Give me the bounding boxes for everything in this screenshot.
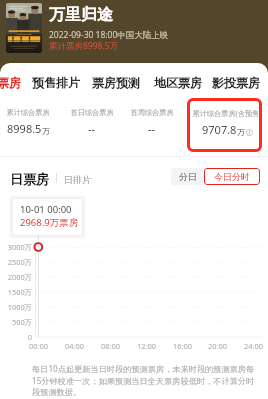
staticText: 1500万 — [7, 287, 32, 297]
button[interactable]: 票房 — [0, 75, 21, 90]
staticText: 预售排片 — [32, 75, 80, 90]
staticText: 3000万 — [7, 242, 32, 252]
staticText: 累计票房8998.5万 — [49, 40, 119, 52]
staticText: 500万 — [11, 317, 32, 327]
staticText: 首周综合票房 — [130, 108, 174, 117]
staticText: 08:00 — [101, 341, 120, 351]
button[interactable]: 影投票房 — [212, 75, 260, 90]
staticText: 1000万 — [7, 302, 32, 312]
staticText: -- — [88, 121, 96, 136]
button[interactable]: 预售排片 — [32, 75, 80, 90]
staticText: -- — [148, 121, 156, 136]
staticText: 首日综合票房 — [70, 108, 114, 117]
staticText: 2000万 — [7, 272, 32, 282]
staticText: 2968.9万票房 — [20, 216, 79, 229]
button[interactable]: 日票房 — [10, 171, 49, 187]
staticText: 24:00 — [244, 341, 263, 351]
staticText: 影投票房 — [212, 75, 260, 90]
staticText: 分日 — [179, 171, 197, 182]
button[interactable]: 首日综合票房 — [70, 108, 114, 136]
button[interactable]: 万里归途 — [49, 5, 113, 25]
staticText: 00:00 — [29, 341, 48, 351]
staticText: 地区票房 — [154, 75, 202, 90]
button[interactable]: 累计综合票房(含预售) — [192, 108, 262, 137]
staticText: 20:00 — [208, 341, 227, 351]
staticText: 日票房 — [10, 171, 49, 187]
staticText: 2500万 — [7, 257, 32, 267]
staticText: 票房预测 — [92, 75, 140, 90]
staticText: 今日分时 — [214, 171, 250, 182]
staticText: 万 — [42, 126, 50, 136]
staticText: 累计综合票房 — [6, 108, 50, 117]
button[interactable]: 今日分时 — [204, 168, 260, 185]
staticText: 04:00 — [65, 341, 84, 351]
staticText: 2022-09-30 18:00中国大陆上映 — [49, 29, 169, 41]
button[interactable]: 累计综合票房 — [6, 108, 50, 136]
staticText: 8998.5 — [7, 121, 42, 136]
staticText: 万 — [237, 127, 245, 137]
staticText: 16:00 — [173, 341, 192, 351]
button[interactable]: 日排片 — [64, 174, 91, 185]
button[interactable]: 地区票房 — [154, 75, 202, 90]
button[interactable]: 票房预测 — [92, 75, 140, 90]
staticText: 累计综合票房(含预售) — [192, 108, 262, 118]
button[interactable]: 首周综合票房 — [130, 108, 174, 136]
staticText: 10-01 00:00 — [20, 203, 72, 216]
staticText: 0 — [27, 332, 32, 342]
staticText: 12:00 — [137, 341, 156, 351]
staticText: 票房 — [0, 75, 21, 90]
staticText: 9707.8 — [202, 122, 237, 137]
staticText: 每日10点起更新当日时段的预测票房，未来时段的预测票房每15分钟校准一次；如果预… — [32, 363, 258, 398]
staticText: 日排片 — [64, 174, 91, 185]
staticText: 万里归途 — [49, 5, 113, 25]
button[interactable]: 分日 — [171, 168, 204, 185]
